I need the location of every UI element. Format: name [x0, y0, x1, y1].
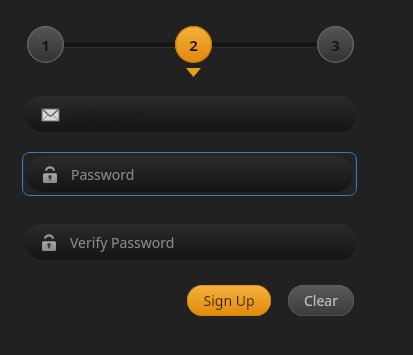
button[interactable]: 1 [27, 26, 64, 63]
button[interactable]: 2 [175, 26, 212, 63]
button[interactable]: 11@qq.com [25, 96, 357, 132]
staticText: 1 [41, 35, 50, 55]
button[interactable]: Password [22, 152, 357, 196]
button[interactable]: Sign Up [187, 285, 271, 316]
staticText: Clear [304, 291, 338, 310]
staticText: 2 [189, 35, 198, 55]
button[interactable]: Verify Password [25, 224, 357, 260]
staticText: Verify Password [70, 233, 175, 252]
button[interactable]: 3 [317, 26, 354, 63]
staticText: 11@qq.com [70, 105, 148, 124]
button[interactable]: Clear [288, 285, 354, 316]
staticText: Password [71, 165, 135, 184]
staticText: 3 [331, 35, 340, 55]
staticText: Sign Up [203, 291, 255, 310]
